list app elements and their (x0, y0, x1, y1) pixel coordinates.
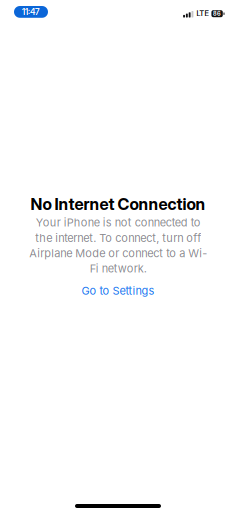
button[interactable]: Go to Settings (81, 275, 154, 297)
staticText: No Internet Connection (30, 194, 205, 214)
staticText: Go to Settings (81, 284, 154, 297)
staticText: 11:47 (22, 7, 40, 17)
staticText: Your iPhone is not connected to the inte… (29, 216, 207, 275)
staticText: LTE (196, 9, 208, 18)
staticText: 86 (213, 10, 221, 17)
